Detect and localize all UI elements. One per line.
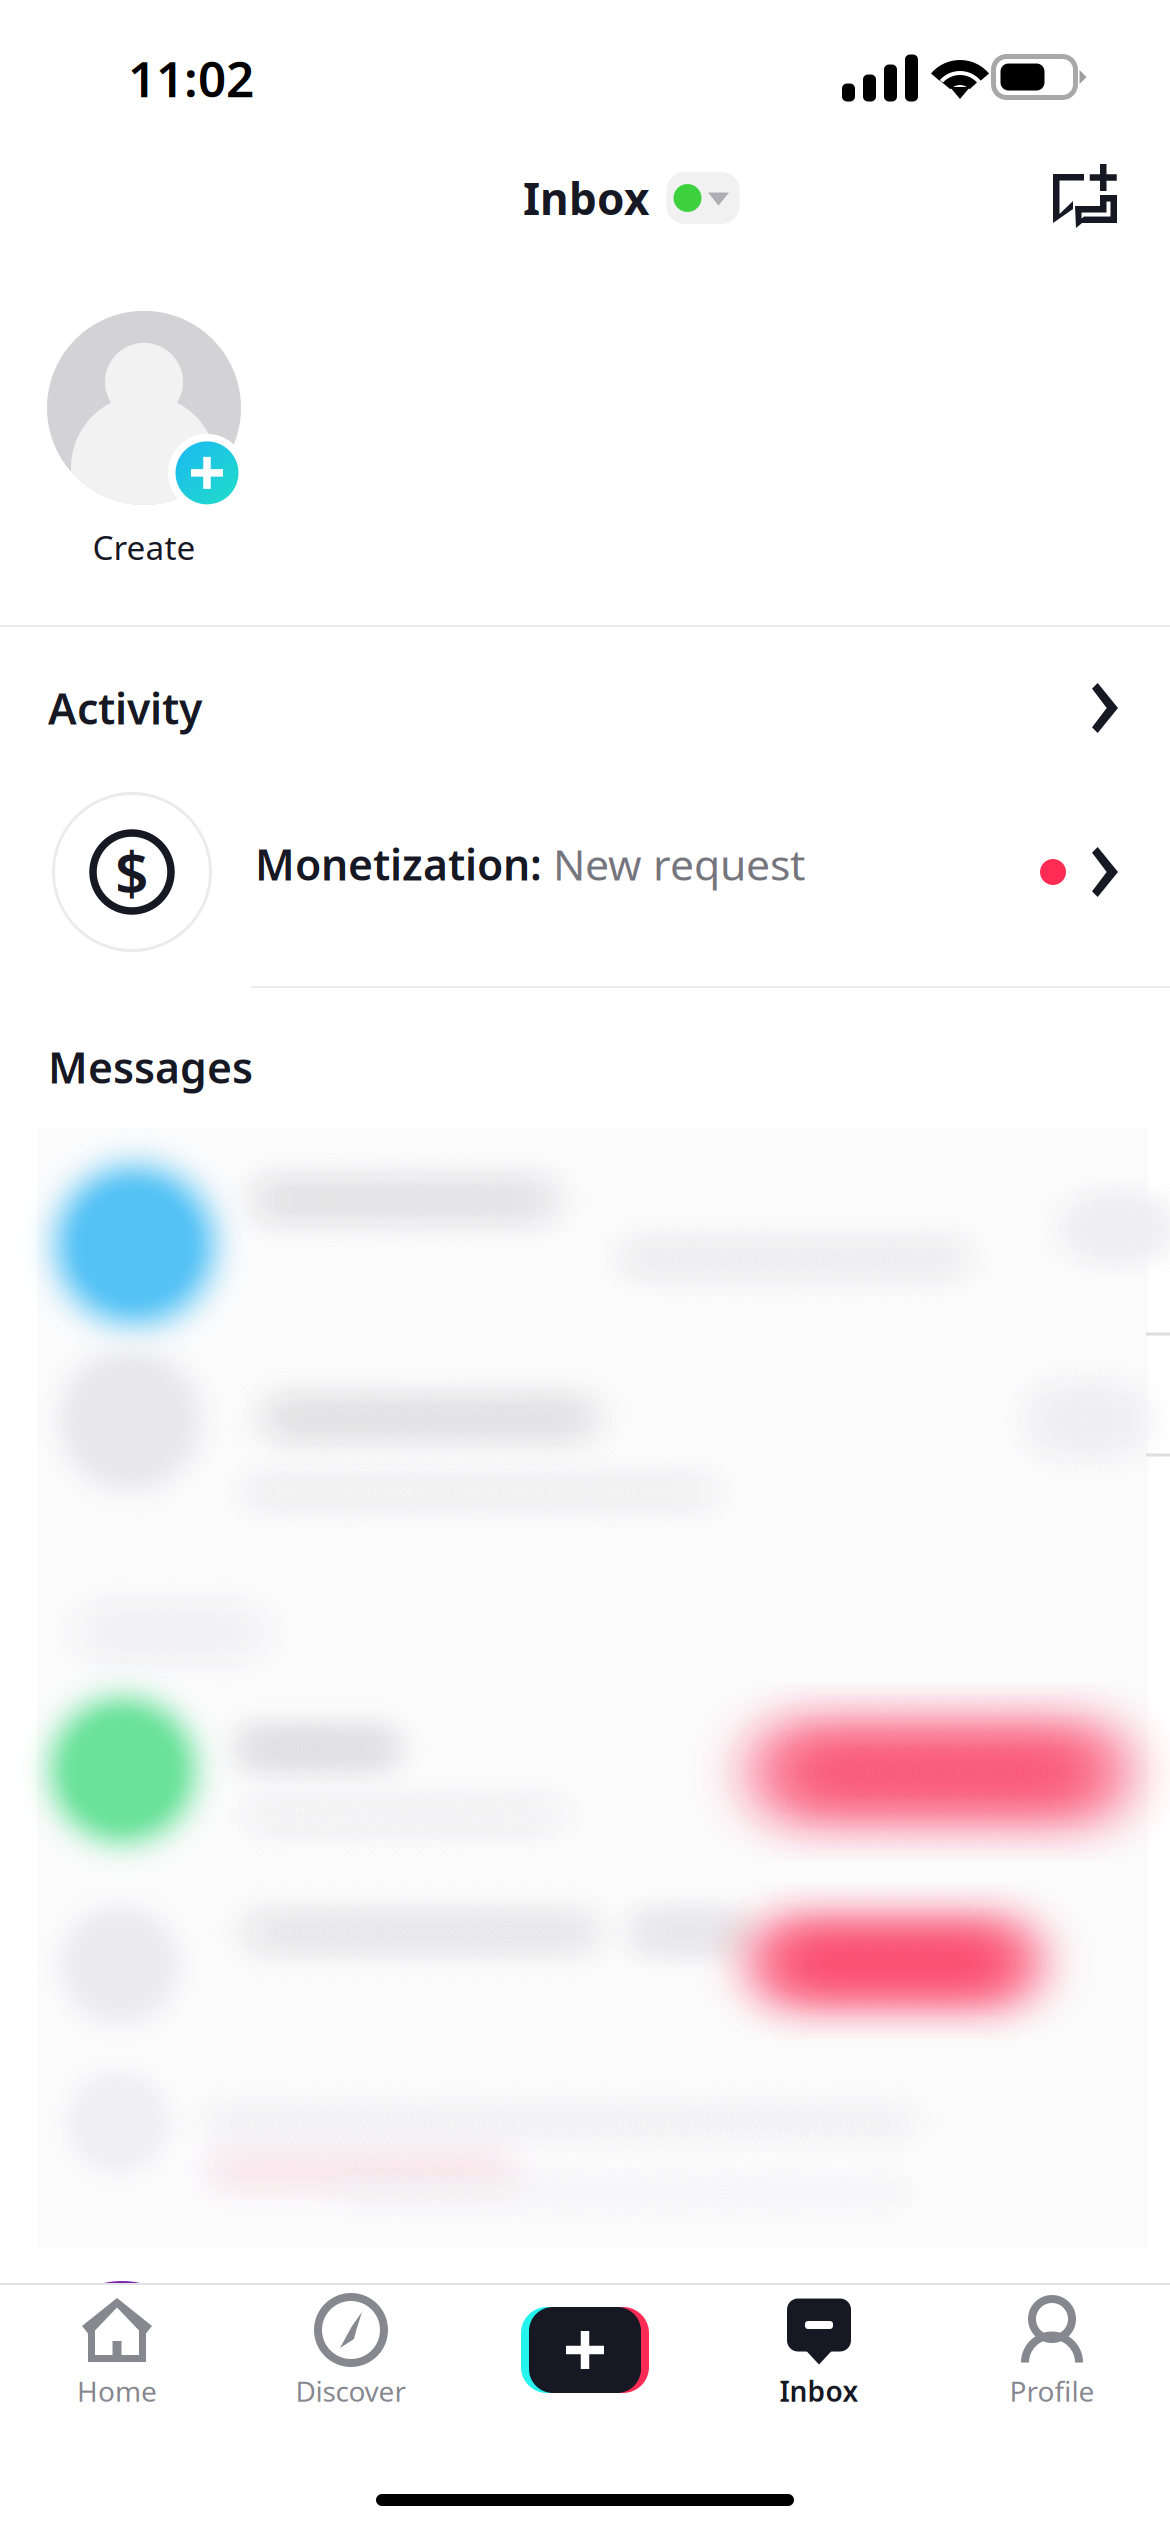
staticText: $ (115, 833, 149, 911)
staticText: Activity (48, 680, 202, 736)
button[interactable]: Create (521, 2307, 649, 2393)
button[interactable]: New message (1047, 161, 1123, 237)
button[interactable]: Home (0, 2283, 234, 2423)
staticText: 11:02 (128, 45, 254, 111)
button[interactable]: Create (41, 305, 247, 569)
button[interactable]: Inbox (702, 2283, 936, 2423)
button[interactable]: Discover (234, 2283, 468, 2423)
staticText: Create (92, 525, 195, 569)
button[interactable]: Activity (0, 635, 1170, 781)
staticText: Inbox (523, 169, 649, 227)
button[interactable]: Profile (935, 2283, 1169, 2423)
staticText: Home (77, 2372, 157, 2410)
staticText: Monetization: (255, 836, 542, 892)
staticText: New request (542, 836, 805, 892)
staticText: Messages (48, 1039, 253, 1095)
button[interactable]: $ (0, 782, 1170, 962)
staticText: Inbox (779, 2372, 858, 2410)
staticText: Profile (1009, 2372, 1094, 2410)
staticText: Discover (295, 2372, 406, 2410)
button[interactable]: Active status (666, 172, 739, 224)
